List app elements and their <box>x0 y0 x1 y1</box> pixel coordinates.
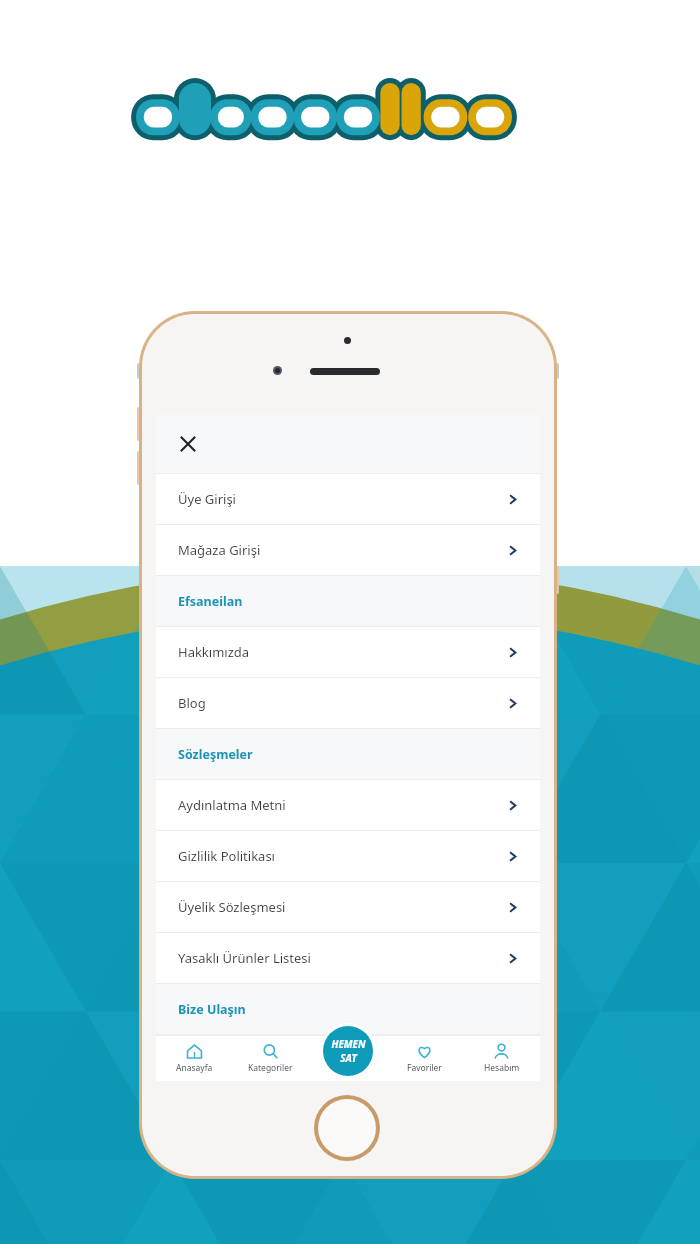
staticText: Blog <box>178 694 206 712</box>
staticText: Mağaza Girişi <box>178 541 261 559</box>
staticText: Üye Girişi <box>178 490 236 508</box>
staticText: Aydınlatma Metni <box>178 796 286 814</box>
staticText: Kategoriler <box>248 1062 293 1074</box>
staticText: Efsaneilan <box>178 593 243 610</box>
button[interactable]: Gizlilik Politikası <box>156 831 540 881</box>
button[interactable]: Anasayfa <box>156 1043 232 1074</box>
staticText: Üyelik Sözleşmesi <box>178 898 286 916</box>
staticText: Anasayfa <box>176 1062 213 1074</box>
button[interactable]: Aydınlatma Metni <box>156 780 540 830</box>
button[interactable]: Blog <box>156 678 540 728</box>
button[interactable]: Favoriler <box>386 1043 463 1074</box>
staticText: Bize Ulaşın <box>178 1001 246 1018</box>
button[interactable]: Mağaza Girişi <box>156 525 540 575</box>
button[interactable]: Yasaklı Ürünler Listesi <box>156 933 540 983</box>
staticText: Hakkımızda <box>178 643 250 661</box>
staticText: Gizlilik Politikası <box>178 847 275 865</box>
staticText: Yasaklı Ürünler Listesi <box>178 949 311 967</box>
staticText: Favoriler <box>407 1062 442 1074</box>
staticText: Hesabım <box>484 1062 520 1074</box>
button[interactable]: HEMEN <box>323 1026 373 1076</box>
button[interactable]: Kategoriler <box>232 1043 309 1074</box>
button[interactable]: Hesabım <box>463 1043 540 1074</box>
button[interactable]: Hakkımızda <box>156 627 540 677</box>
staticText: Sözleşmeler <box>178 746 253 763</box>
button[interactable]: Üyelik Sözleşmesi <box>156 882 540 932</box>
button[interactable]: Kapat <box>156 415 540 473</box>
staticText: HEMEN <box>331 1037 366 1051</box>
button[interactable]: Üye Girişi <box>156 474 540 524</box>
staticText: SAT <box>340 1051 357 1065</box>
